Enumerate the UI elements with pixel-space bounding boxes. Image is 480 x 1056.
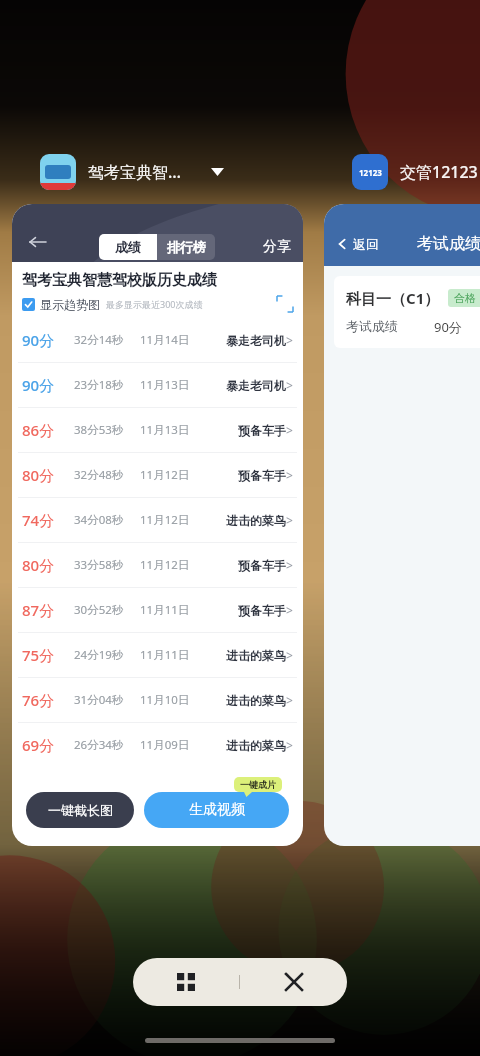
staticText: 11月09日 xyxy=(140,737,202,753)
staticText: 75分 xyxy=(22,645,74,665)
staticText: 预备车手 xyxy=(238,603,286,618)
button[interactable]: 生成视频 xyxy=(144,792,289,828)
staticText: 74分 xyxy=(22,510,74,530)
button[interactable]: More options xyxy=(205,160,229,184)
staticText: 90分 xyxy=(22,330,74,350)
staticText: 生成视频 xyxy=(189,801,245,819)
staticText: 合格 xyxy=(454,291,476,305)
staticText: 暴走老司机 xyxy=(226,378,286,393)
staticText: > xyxy=(286,602,293,618)
staticText: 显示趋势图 xyxy=(40,297,100,312)
button[interactable]: 75分 xyxy=(12,633,303,677)
staticText: 69分 xyxy=(22,735,74,755)
staticText: 33分58秒 xyxy=(74,557,140,573)
button[interactable]: All apps xyxy=(133,958,239,1006)
staticText: 最多显示最近300次成绩 xyxy=(106,298,203,310)
button[interactable]: 80分 xyxy=(12,543,303,587)
staticText: 11月11日 xyxy=(140,647,202,663)
button[interactable]: 排行榜 xyxy=(157,234,215,260)
staticText: > xyxy=(286,737,293,753)
staticText: 一键截长图 xyxy=(48,802,113,818)
button[interactable]: 成绩 xyxy=(99,234,157,260)
staticText: 23分18秒 xyxy=(74,377,140,393)
staticText: 30分52秒 xyxy=(74,602,140,618)
button[interactable]: Close all xyxy=(240,958,347,1006)
staticText: 11月11日 xyxy=(140,602,202,618)
staticText: 预备车手 xyxy=(238,558,286,573)
staticText: 预备车手 xyxy=(238,468,286,483)
staticText: > xyxy=(286,467,293,483)
staticText: 86分 xyxy=(22,420,74,440)
button[interactable]: 80分 xyxy=(12,453,303,497)
staticText: 11月13日 xyxy=(140,422,202,438)
staticText: 11月12日 xyxy=(140,467,202,483)
button[interactable]: Back xyxy=(12,204,303,846)
staticText: 进击的菜鸟 xyxy=(226,513,286,528)
staticText: 考试成绩 xyxy=(346,318,398,334)
button[interactable]: 一键截长图 xyxy=(26,792,134,828)
staticText: > xyxy=(286,332,293,348)
staticText: 90分 xyxy=(434,318,462,336)
staticText: > xyxy=(286,512,293,528)
staticText: 预备车手 xyxy=(238,423,286,438)
staticText: 34分08秒 xyxy=(74,512,140,528)
staticText: 考试成绩 xyxy=(417,234,480,254)
staticText: 进击的菜鸟 xyxy=(226,693,286,708)
staticText: 11月10日 xyxy=(140,692,202,708)
staticText: 进击的菜鸟 xyxy=(226,648,286,663)
staticText: 31分04秒 xyxy=(74,692,140,708)
button[interactable]: Back xyxy=(24,228,52,256)
button[interactable]: Fullscreen xyxy=(277,296,293,312)
staticText: 11月12日 xyxy=(140,557,202,573)
staticText: 38分53秒 xyxy=(74,422,140,438)
staticText: 进击的菜鸟 xyxy=(226,738,286,753)
staticText: > xyxy=(286,557,293,573)
button[interactable]: 69分 xyxy=(12,723,303,767)
staticText: > xyxy=(286,647,293,663)
staticText: 80分 xyxy=(22,465,74,485)
staticText: 80分 xyxy=(22,555,74,575)
button[interactable] xyxy=(22,298,35,311)
staticText: 12123 xyxy=(359,167,382,178)
staticText: 暴走老司机 xyxy=(226,333,286,348)
button[interactable]: 87分 xyxy=(12,588,303,632)
staticText: 90分 xyxy=(22,375,74,395)
staticText: 返回 xyxy=(353,236,379,252)
button[interactable]: 返回 xyxy=(324,204,480,846)
staticText: > xyxy=(286,422,293,438)
staticText: 26分34秒 xyxy=(74,737,140,753)
button[interactable]: 86分 xyxy=(12,408,303,452)
staticText: 一键成片 xyxy=(240,779,276,790)
button[interactable]: 分享 xyxy=(263,238,291,256)
staticText: 32分14秒 xyxy=(74,332,140,348)
staticText: 11月13日 xyxy=(140,377,202,393)
staticText: 交管12123 xyxy=(400,161,478,183)
staticText: 排行榜 xyxy=(167,239,206,255)
staticText: 76分 xyxy=(22,690,74,710)
staticText: 驾考宝典智… xyxy=(88,161,181,183)
staticText: 11月12日 xyxy=(140,512,202,528)
staticText: 科目一（C1） xyxy=(346,288,440,308)
staticText: 成绩 xyxy=(115,239,141,255)
staticText: 24分19秒 xyxy=(74,647,140,663)
staticText: 32分48秒 xyxy=(74,467,140,483)
staticText: > xyxy=(286,377,293,393)
staticText: > xyxy=(286,692,293,708)
button[interactable]: 74分 xyxy=(12,498,303,542)
button[interactable]: 90分 xyxy=(12,363,303,407)
button[interactable]: 76分 xyxy=(12,678,303,722)
staticText: 分享 xyxy=(263,238,291,256)
staticText: 87分 xyxy=(22,600,74,620)
staticText: 驾考宝典智慧驾校版历史成绩 xyxy=(22,271,217,290)
staticText: 11月14日 xyxy=(140,332,202,348)
button[interactable]: 90分 xyxy=(12,318,303,362)
